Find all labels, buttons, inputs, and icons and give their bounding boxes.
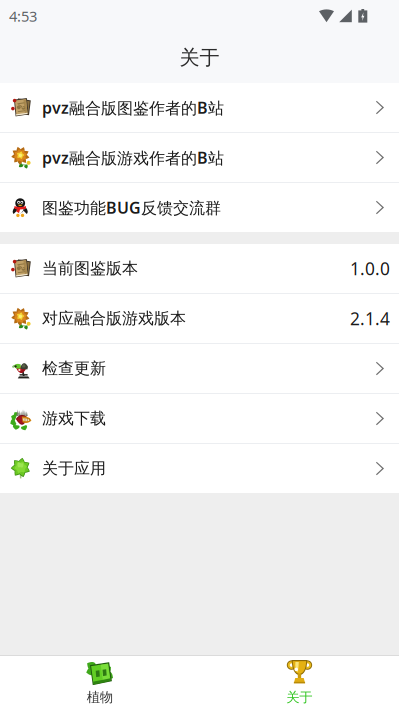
staticText: pvz融合版游戏作者的B站 <box>42 147 224 168</box>
staticText: 游戏下载 <box>42 409 106 428</box>
staticText: 图鉴功能BUG反馈交流群 <box>42 197 221 218</box>
button[interactable]: 检查更新 <box>0 344 399 393</box>
staticText: 检查更新 <box>42 359 106 378</box>
staticText: pvz融合版图鉴作者的B站 <box>42 97 224 118</box>
button[interactable]: pvz融合版游戏作者的B站 <box>0 133 399 182</box>
button[interactable]: 关于 <box>199 656 399 711</box>
staticText: 4:53 <box>9 6 37 26</box>
button[interactable]: pvz融合版图鉴作者的B站 <box>0 83 399 132</box>
staticText: 关于 <box>286 689 312 705</box>
staticText: 植物 <box>87 689 113 705</box>
button[interactable]: 游戏下载 <box>0 394 399 443</box>
button[interactable]: 植物 <box>0 656 199 711</box>
staticText: 当前图鉴版本 <box>42 259 138 278</box>
button[interactable]: 图鉴功能BUG反馈交流群 <box>0 183 399 232</box>
staticText: 关于 <box>179 45 219 70</box>
staticText: 关于应用 <box>42 459 106 478</box>
staticText: 1.0.0 <box>350 257 390 280</box>
staticText: 对应融合版游戏版本 <box>42 309 186 328</box>
button[interactable]: 关于应用 <box>0 444 399 493</box>
staticText: 2.1.4 <box>350 307 390 330</box>
